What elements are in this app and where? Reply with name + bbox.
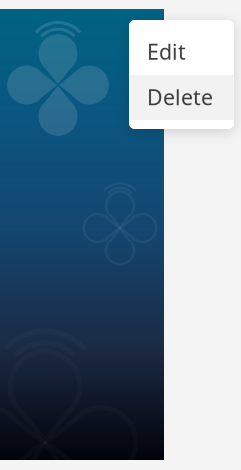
button[interactable]: Delete [129,75,234,120]
button[interactable]: Edit [129,20,234,75]
staticText: Edit [147,37,186,66]
staticText: Delete [147,83,213,111]
